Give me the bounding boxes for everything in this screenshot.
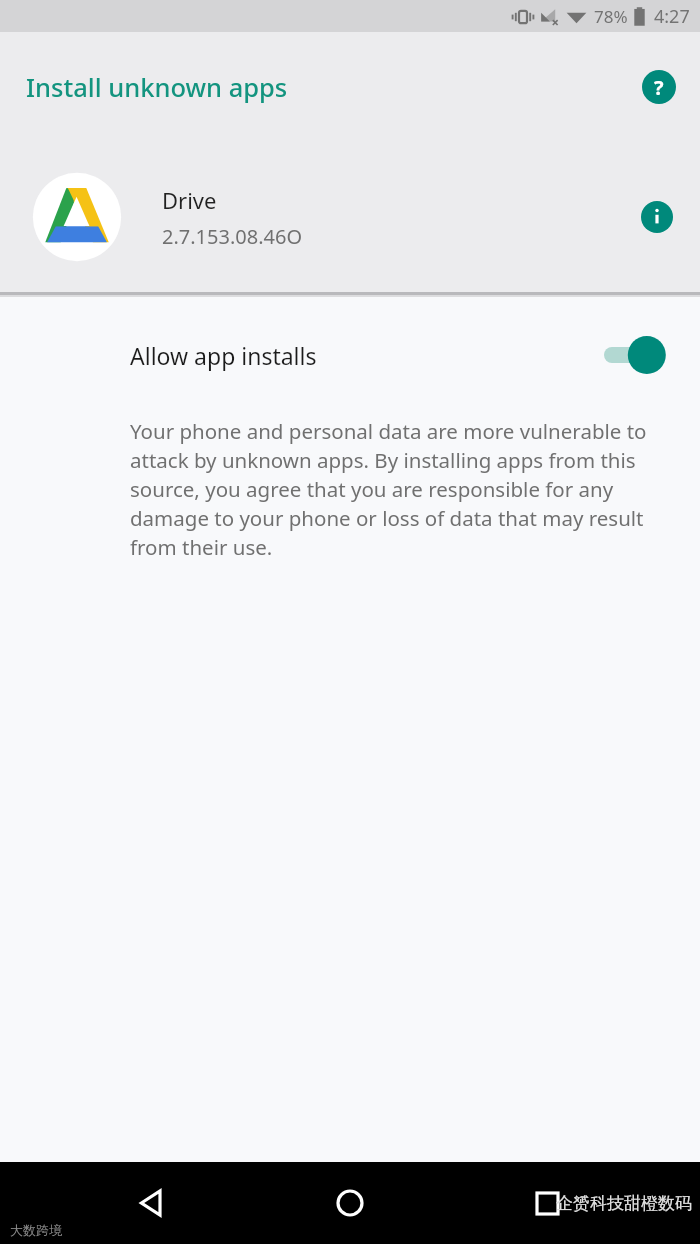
staticText: Install unknown apps: [26, 70, 288, 105]
button[interactable]: Home: [321, 1174, 379, 1232]
staticText: 大数跨境: [10, 1222, 62, 1238]
staticText: 78%: [594, 5, 628, 28]
button[interactable]: Drive: [0, 142, 700, 292]
staticText: ?: [654, 74, 664, 101]
staticText: Drive: [162, 185, 217, 215]
staticText: 4:27: [654, 4, 690, 29]
other: Allow app installs toggle: [604, 335, 660, 375]
staticText: Your phone and personal data are more vu…: [130, 417, 678, 561]
button[interactable]: App info: [635, 195, 679, 239]
button[interactable]: Back: [122, 1174, 180, 1232]
staticText: 企赟科技甜橙数码: [556, 1193, 692, 1214]
staticText: 2.7.153.08.46O: [162, 223, 303, 250]
button[interactable]: Help: [636, 64, 682, 110]
staticText: Allow app installs: [130, 340, 317, 371]
button[interactable]: Allow app installs: [0, 324, 700, 386]
button[interactable]: Recent apps: [518, 1174, 576, 1232]
